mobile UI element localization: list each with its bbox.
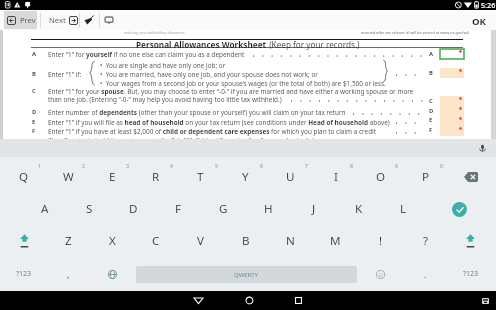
staticText: E: [32, 118, 36, 126]
button[interactable]: [440, 106, 464, 116]
staticText: M: [330, 233, 341, 249]
staticText: D: [429, 107, 434, 115]
button[interactable]: Clear form: [80, 10, 98, 30]
button[interactable]: Y: [223, 161, 268, 193]
staticText: 0: [440, 162, 443, 169]
button[interactable]: I: [313, 161, 358, 193]
button[interactable]: Shift: [448, 225, 493, 257]
button[interactable]: ?: [403, 225, 448, 257]
button[interactable]: F: [156, 193, 201, 225]
button[interactable]: [440, 68, 464, 78]
button[interactable]: H: [246, 193, 291, 225]
button[interactable]: [440, 49, 464, 59]
staticText: Enter “1” if you will file as head of ho…: [48, 118, 390, 127]
staticText: Prev: [20, 15, 36, 25]
staticText: N: [286, 233, 295, 249]
button[interactable]: X: [90, 225, 134, 257]
button[interactable]: OK: [472, 10, 486, 30]
button[interactable]: Backspace: [448, 161, 493, 193]
staticText: T: [197, 169, 204, 185]
staticText: Personal Allowances Worksheet: [136, 39, 267, 50]
staticText: U: [286, 169, 295, 185]
staticText: Enter “1” if:: [48, 70, 82, 79]
button[interactable]: Enter: [426, 193, 493, 225]
button[interactable]: J: [291, 193, 336, 225]
button[interactable]: Prev: [4, 11, 37, 29]
button[interactable]: Back: [178, 291, 218, 310]
button[interactable]: T: [178, 161, 223, 193]
staticText: P: [422, 169, 430, 185]
staticText: 7: [305, 162, 308, 169]
staticText: 4: [170, 162, 173, 169]
button[interactable]: R: [134, 161, 178, 193]
button[interactable]: Q: [2, 161, 46, 193]
button[interactable]: G: [201, 193, 246, 225]
staticText: R: [152, 169, 160, 185]
staticText: W: [63, 169, 74, 185]
button[interactable]: QWERTY: [135, 257, 358, 291]
button[interactable]: [440, 126, 464, 136]
button[interactable]: Shift: [2, 225, 46, 257]
button[interactable]: ?123: [2, 257, 46, 291]
staticText: B: [32, 70, 36, 78]
staticText: Q: [19, 169, 29, 185]
staticText: E: [109, 169, 116, 185]
staticText: Next: [49, 15, 66, 25]
button[interactable]: [440, 116, 464, 126]
staticText: OK: [472, 15, 486, 28]
staticText: reducing your withholding allowances: [124, 30, 185, 35]
staticText: Y: [242, 169, 249, 185]
staticText: 8: [350, 162, 353, 169]
staticText: Enter “1” if you have at least $2,000 of…: [48, 127, 377, 136]
button[interactable]: E: [90, 161, 134, 193]
button[interactable]: K: [336, 193, 381, 225]
button[interactable]: W: [46, 161, 90, 193]
staticText: (Keep for your records.): [267, 39, 360, 50]
staticText: 9: [395, 162, 398, 169]
button[interactable]: P: [403, 161, 448, 193]
staticText: Enter “1” for your spouse. But, you may …: [48, 87, 414, 96]
staticText: J: [312, 201, 316, 217]
button[interactable]: M: [313, 225, 358, 257]
button[interactable]: Next: [45, 10, 81, 30]
staticText: Enter “1” for yourself if no one else ca…: [48, 50, 245, 59]
staticText: K: [355, 201, 363, 217]
button[interactable]: Emoji: [358, 257, 403, 291]
staticText: !: [379, 233, 383, 249]
staticText: Z: [65, 233, 72, 249]
button[interactable]: A: [23, 193, 67, 225]
staticText: ?123: [463, 269, 479, 279]
button[interactable]: C: [134, 225, 178, 257]
button[interactable]: V: [178, 225, 223, 257]
button[interactable]: Hide keyboard: [481, 296, 490, 305]
button[interactable]: !: [358, 225, 403, 257]
staticText: 5: [215, 162, 218, 169]
button[interactable]: Z: [46, 225, 90, 257]
staticText: ?: [423, 233, 429, 249]
staticText: 3: [126, 162, 129, 169]
button[interactable]: Keyboard: [100, 10, 118, 30]
button[interactable]: Language: [90, 257, 135, 291]
button[interactable]: ,: [46, 257, 90, 291]
button[interactable]: B: [223, 225, 268, 257]
staticText: 6: [260, 162, 263, 169]
button[interactable]: [440, 96, 464, 106]
staticText: enacted after we release it) will be pos…: [361, 30, 470, 35]
staticText: S: [86, 201, 93, 217]
staticText: L: [400, 201, 407, 217]
button[interactable]: D: [111, 193, 156, 225]
staticText: B: [242, 233, 250, 249]
button[interactable]: O: [358, 161, 403, 193]
button[interactable]: ?123: [448, 257, 493, 291]
button[interactable]: N: [268, 225, 313, 257]
staticText: H: [264, 201, 273, 217]
button[interactable]: U: [268, 161, 313, 193]
staticText: O: [376, 169, 386, 185]
button[interactable]: L: [381, 193, 426, 225]
button[interactable]: Recents: [278, 291, 318, 310]
staticText: F: [429, 126, 433, 134]
button[interactable]: Home: [229, 291, 269, 310]
staticText: C: [152, 233, 160, 249]
button[interactable]: S: [67, 193, 111, 225]
